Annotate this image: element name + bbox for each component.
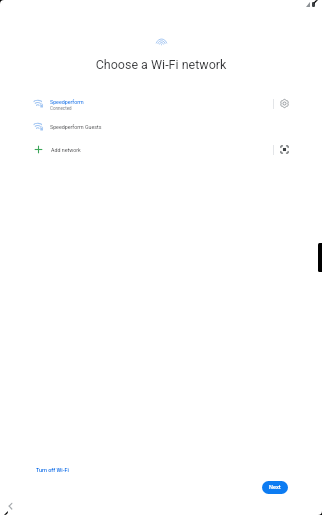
staticText: Connected <box>50 106 72 111</box>
button[interactable]: Network settings <box>280 99 289 108</box>
staticText: Turn off Wi-Fi <box>36 467 69 473</box>
staticText: Add network <box>51 147 273 153</box>
staticText: Speedperform <box>50 99 84 105</box>
button[interactable]: Scan QR code <box>280 145 289 154</box>
button[interactable]: Back <box>5 500 16 511</box>
button[interactable]: Speedperform Guests <box>0 115 322 138</box>
button[interactable]: Speedperform <box>0 92 322 115</box>
button[interactable]: Add network <box>0 138 322 161</box>
button[interactable]: Turn off Wi-Fi <box>34 465 71 475</box>
staticText: Speedperform Guests <box>50 124 102 130</box>
staticText: Next <box>269 484 281 491</box>
staticText: Choose a Wi-Fi network <box>0 57 322 72</box>
button[interactable]: Next <box>262 481 288 494</box>
